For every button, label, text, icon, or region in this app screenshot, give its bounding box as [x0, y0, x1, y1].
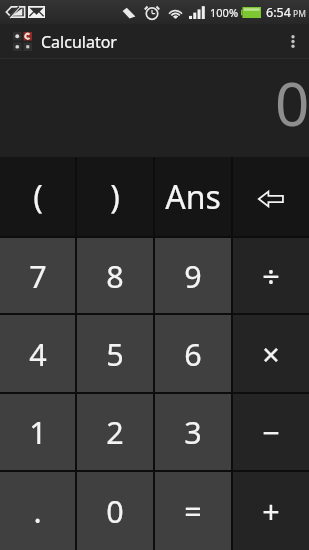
staticText: Calculator: [41, 31, 117, 53]
button[interactable]: (: [0, 157, 75, 236]
staticText: 4: [29, 333, 47, 375]
staticText: ): [110, 175, 120, 219]
staticText: (: [33, 175, 43, 219]
staticText: 3: [184, 411, 202, 453]
staticText: 7: [29, 255, 47, 297]
staticText: 0: [106, 490, 124, 532]
button[interactable]: Ans: [155, 157, 231, 236]
staticText: 9: [184, 255, 202, 297]
button[interactable]: 0: [77, 472, 153, 550]
button[interactable]: 8: [77, 238, 153, 313]
staticText: 1: [29, 411, 47, 453]
staticText: Ans: [165, 175, 221, 219]
button[interactable]: 4: [0, 315, 75, 392]
button[interactable]: 6: [155, 315, 231, 392]
staticText: 0: [275, 62, 309, 144]
staticText: 8: [106, 255, 124, 297]
staticText: 2: [106, 411, 124, 453]
button[interactable]: 2: [77, 394, 153, 470]
button[interactable]: .: [0, 472, 75, 550]
button[interactable]: +: [233, 472, 309, 550]
button[interactable]: =: [155, 472, 231, 550]
button[interactable]: 9: [155, 238, 231, 313]
staticText: =: [184, 490, 202, 532]
button[interactable]: 3: [155, 394, 231, 470]
staticText: ÷: [262, 255, 280, 297]
button[interactable]: ): [77, 157, 153, 236]
button[interactable]: More options: [277, 24, 309, 59]
staticText: PM: [293, 8, 306, 20]
staticText: −: [262, 411, 280, 453]
staticText: +: [262, 490, 280, 532]
button[interactable]: ÷: [233, 238, 309, 313]
button[interactable]: 1: [0, 394, 75, 470]
staticText: 6:54: [266, 4, 291, 21]
button[interactable]: 7: [0, 238, 75, 313]
staticText: .: [33, 490, 42, 532]
button[interactable]: −: [233, 394, 309, 470]
staticText: ×: [262, 333, 280, 375]
button[interactable]: 5: [77, 315, 153, 392]
staticText: 6: [184, 333, 202, 375]
button[interactable]: Backspace: [233, 157, 309, 236]
button[interactable]: ×: [233, 315, 309, 392]
staticText: 5: [106, 333, 124, 375]
staticText: 100%: [210, 5, 239, 20]
